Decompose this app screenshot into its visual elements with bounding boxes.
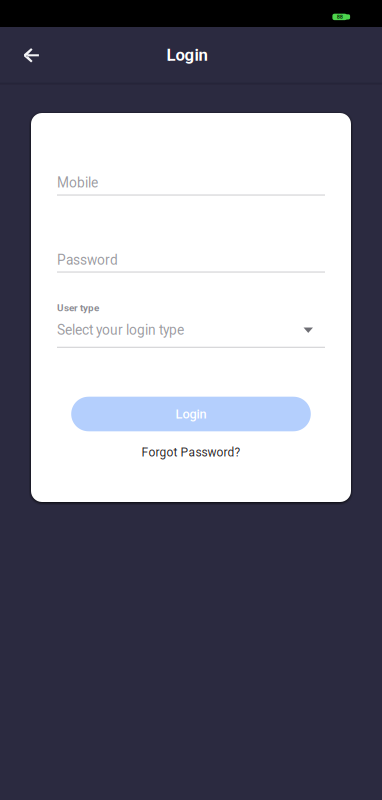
button[interactable]: Forgot Password?: [57, 443, 325, 461]
staticText: Select your login type: [57, 322, 184, 338]
button[interactable]: Back: [11, 35, 51, 75]
staticText: Login: [166, 45, 207, 65]
staticText: Login: [175, 406, 206, 421]
staticText: Password: [57, 252, 118, 268]
staticText: User type: [57, 302, 99, 314]
staticText: Mobile: [57, 175, 98, 191]
button[interactable]: Login: [71, 397, 311, 431]
staticText: 88: [337, 14, 343, 20]
staticText: Forgot Password?: [141, 445, 240, 460]
